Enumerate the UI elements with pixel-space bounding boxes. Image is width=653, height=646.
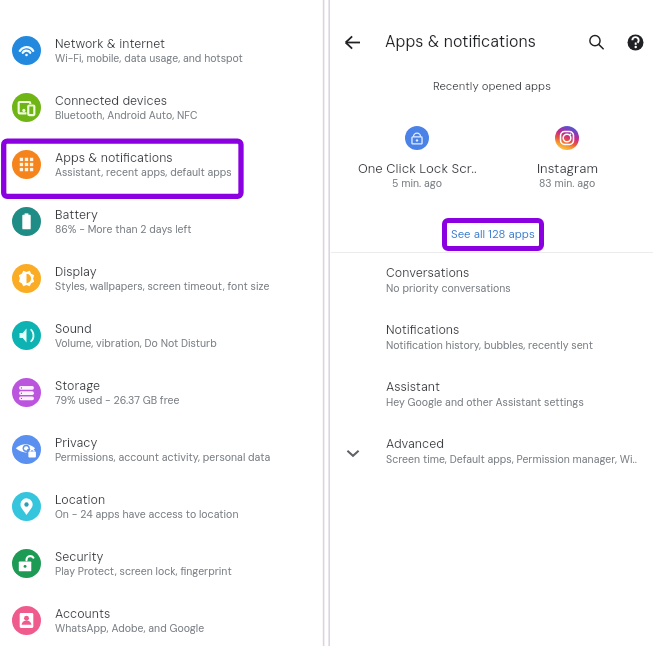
staticText: Advanced xyxy=(386,436,444,452)
staticText: Hey Google and other Assistant settings xyxy=(386,396,584,410)
staticText: See all 128 apps xyxy=(451,227,535,242)
button[interactable]: Search xyxy=(580,26,612,58)
button[interactable]: Security xyxy=(0,535,322,592)
button[interactable]: Battery xyxy=(0,193,322,250)
staticText: Volume, vibration, Do Not Disturb xyxy=(55,337,217,351)
staticText: Connected devices xyxy=(55,93,168,109)
staticText: 86% - More than 2 days left xyxy=(55,223,192,237)
staticText: Security xyxy=(55,549,104,565)
staticText: Screen time, Default apps, Permission ma… xyxy=(386,453,637,467)
button[interactable]: Storage xyxy=(0,364,322,421)
staticText: Privacy xyxy=(55,435,98,451)
staticText: Storage xyxy=(55,378,101,394)
staticText: Notification history, bubbles, recently … xyxy=(386,339,593,353)
button[interactable]: Sound xyxy=(0,307,322,364)
button[interactable]: Location xyxy=(0,478,322,535)
button[interactable]: Accounts xyxy=(0,592,322,646)
button[interactable]: Back xyxy=(336,26,368,58)
button[interactable]: Privacy xyxy=(0,421,322,478)
staticText: Notifications xyxy=(386,322,460,338)
button[interactable]: Advanced xyxy=(331,424,653,481)
button[interactable]: Apps & notifications xyxy=(0,136,322,193)
staticText: Bluetooth, Android Auto, NFC xyxy=(55,109,198,123)
button[interactable]: One Click Lock Scr.. xyxy=(337,126,497,191)
staticText: Play Protect, screen lock, fingerprint xyxy=(55,565,232,579)
staticText: Instagram xyxy=(537,160,598,177)
staticText: Styles, wallpapers, screen timeout, font… xyxy=(55,280,270,294)
staticText: Apps & notifications xyxy=(385,31,536,52)
button[interactable]: Notifications xyxy=(331,310,653,367)
staticText: 79% used - 26.37 GB free xyxy=(55,394,180,408)
button[interactable]: Instagram xyxy=(487,126,647,191)
staticText: Assistant xyxy=(386,379,440,395)
staticText: Permissions, account activity, personal … xyxy=(55,451,271,465)
staticText: WhatsApp, Adobe, and Google xyxy=(55,622,205,636)
staticText: Wi-Fi, mobile, data usage, and hotspot xyxy=(55,52,243,66)
staticText: Apps & notifications xyxy=(55,150,173,166)
button[interactable]: Display xyxy=(0,250,322,307)
staticText: Network & internet xyxy=(55,36,166,52)
staticText: 83 min. ago xyxy=(539,177,596,191)
staticText: Assistant, recent apps, default apps xyxy=(55,166,232,180)
staticText: Battery xyxy=(55,207,98,223)
button[interactable]: Network & internet xyxy=(0,22,322,79)
staticText: Accounts xyxy=(55,606,111,622)
staticText: Conversations xyxy=(386,265,470,281)
staticText: 5 min. ago xyxy=(392,177,442,191)
staticText: No priority conversations xyxy=(386,282,511,296)
button[interactable]: Connected devices xyxy=(0,79,322,136)
staticText: Display xyxy=(55,264,97,280)
button[interactable]: See all 128 apps xyxy=(442,218,544,251)
staticText: One Click Lock Scr.. xyxy=(358,160,477,177)
staticText: On - 24 apps have access to location xyxy=(55,508,239,522)
button[interactable]: Help xyxy=(619,26,651,58)
button[interactable]: Conversations xyxy=(331,253,653,310)
button[interactable]: Assistant xyxy=(331,367,653,424)
staticText: Sound xyxy=(55,321,92,337)
staticText: Recently opened apps xyxy=(433,79,551,94)
staticText: Location xyxy=(55,492,106,508)
